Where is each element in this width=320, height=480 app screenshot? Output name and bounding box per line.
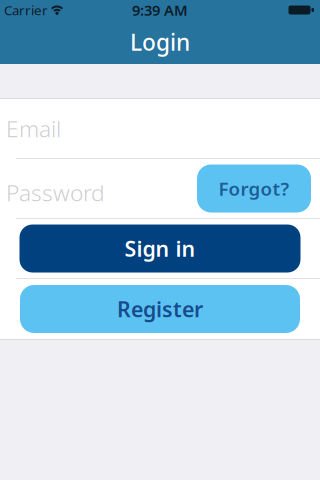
- staticText: 9:39 AM: [132, 0, 188, 20]
- button[interactable]: Register: [20, 285, 300, 333]
- staticText: Register: [117, 295, 203, 323]
- staticText: Login: [130, 27, 190, 57]
- staticText: Email: [6, 113, 61, 143]
- button[interactable]: Sign in: [19, 224, 300, 272]
- staticText: Password: [6, 177, 105, 207]
- button[interactable]: Forgot?: [197, 164, 311, 212]
- staticText: Carrier: [4, 1, 48, 19]
- staticText: Forgot?: [218, 176, 289, 201]
- staticText: Sign in: [124, 234, 195, 263]
